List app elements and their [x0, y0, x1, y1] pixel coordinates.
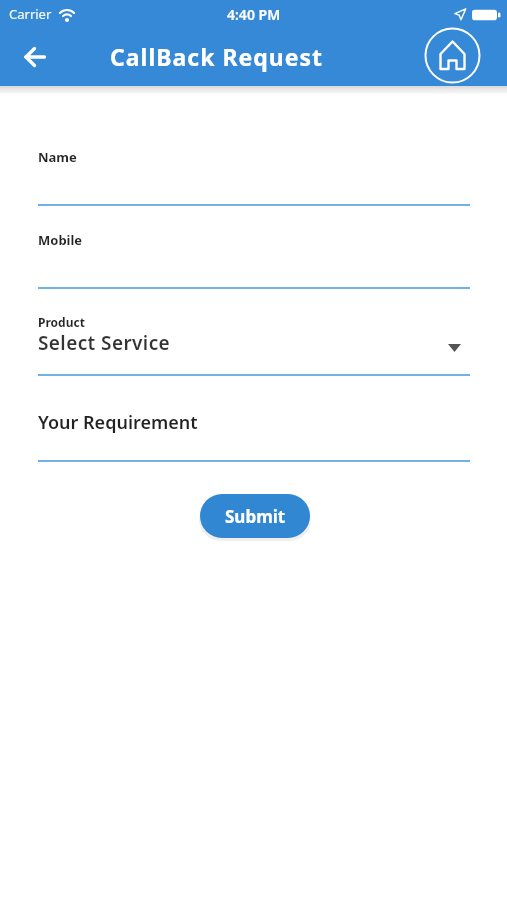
button[interactable]: [424, 27, 481, 84]
staticText: Carrier: [9, 5, 52, 23]
staticText: CallBack Request: [110, 41, 323, 72]
staticText: Select Service: [38, 330, 171, 356]
button[interactable]: [16, 38, 54, 76]
staticText: Mobile: [38, 231, 83, 249]
button[interactable]: Select Service: [38, 330, 507, 360]
staticText: Submit: [225, 505, 286, 528]
button[interactable]: Submit: [200, 494, 310, 538]
staticText: Your Requirement: [38, 410, 198, 435]
staticText: Product: [38, 314, 85, 330]
staticText: 4:40 PM: [227, 5, 281, 24]
staticText: Name: [38, 148, 77, 166]
